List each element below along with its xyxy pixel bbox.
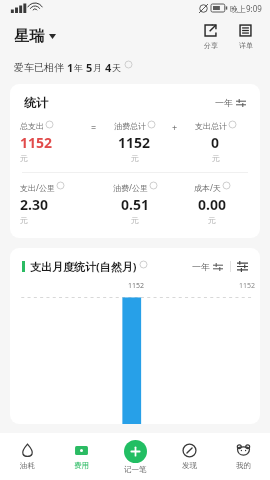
- button[interactable]: 总支出: [20, 121, 88, 163]
- staticText: 分享: [204, 41, 218, 50]
- button[interactable]: 费用: [72, 441, 91, 472]
- button[interactable]: 详单: [235, 20, 256, 52]
- button[interactable]: 星瑞: [12, 23, 58, 50]
- staticText: 元: [131, 153, 139, 163]
- button[interactable]: 我的: [234, 441, 253, 472]
- button[interactable]: 一年: [190, 259, 225, 274]
- staticText: 详单: [239, 41, 253, 50]
- button[interactable]: 油费总计: [100, 121, 169, 163]
- staticText: 支出总计: [195, 121, 227, 131]
- staticText: 1152: [20, 133, 53, 152]
- button[interactable]: 支出/公里: [20, 182, 96, 225]
- staticText: 成本/天: [194, 182, 221, 193]
- staticText: 油耗: [20, 461, 35, 470]
- staticText: 年: [74, 62, 83, 73]
- staticText: 发现: [182, 461, 197, 470]
- button[interactable]: 支出总计: [181, 121, 250, 163]
- staticText: 2.30: [20, 195, 48, 214]
- staticText: 一年: [192, 261, 210, 272]
- staticText: 总支出: [20, 121, 44, 131]
- staticText: 4: [105, 60, 112, 75]
- staticText: 星瑞: [14, 27, 44, 46]
- staticText: 0: [211, 133, 220, 152]
- button[interactable]: 发现: [180, 441, 199, 472]
- staticText: 爱车已相伴: [14, 61, 64, 74]
- staticText: 1152: [239, 281, 256, 291]
- staticText: +: [172, 121, 178, 133]
- button[interactable]: 成本/天: [173, 182, 250, 225]
- staticText: 一年: [215, 97, 233, 108]
- button[interactable]: 记一笔: [122, 438, 149, 476]
- staticText: 1152: [128, 281, 145, 291]
- staticText: 5: [86, 60, 93, 75]
- staticText: 元: [208, 215, 216, 225]
- button[interactable]: 筛选: [236, 260, 249, 273]
- staticText: 1152: [118, 133, 151, 152]
- staticText: 统计: [24, 95, 48, 110]
- staticText: =: [91, 121, 97, 133]
- staticText: 0.00: [198, 195, 226, 214]
- staticText: 1: [67, 60, 74, 75]
- staticText: 支出/公里: [20, 182, 55, 193]
- button[interactable]: 分享: [200, 20, 221, 52]
- staticText: 晚上9:09: [230, 3, 262, 14]
- staticText: 费用: [74, 461, 89, 470]
- staticText: 记一笔: [124, 465, 147, 474]
- staticText: 元: [20, 215, 28, 225]
- staticText: 元: [212, 153, 220, 163]
- staticText: 元: [20, 153, 28, 163]
- button[interactable]: 油耗: [18, 441, 37, 472]
- button[interactable]: 一年: [213, 95, 248, 110]
- staticText: 月: [93, 62, 102, 73]
- staticText: 我的: [236, 461, 251, 470]
- staticText: 油费总计: [114, 121, 146, 131]
- staticText: 0.51: [121, 195, 149, 214]
- button[interactable]: 油费/公里: [96, 182, 173, 225]
- staticText: 支出月度统计(自然月): [30, 259, 137, 274]
- staticText: 油费/公里: [113, 182, 148, 193]
- staticText: 天: [112, 62, 121, 73]
- staticText: 元: [131, 215, 139, 225]
